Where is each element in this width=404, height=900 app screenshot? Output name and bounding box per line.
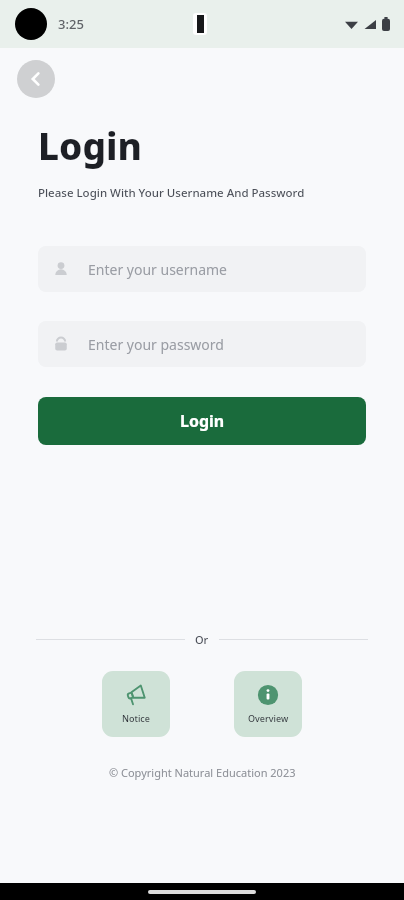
staticText: Or (195, 632, 209, 647)
staticText: Please Login With Your Username And Pass… (38, 185, 305, 201)
staticText: Login (38, 120, 142, 170)
button[interactable]: Overview (234, 671, 302, 737)
staticText: Enter your username (88, 260, 228, 279)
button[interactable]: Enter your password (38, 321, 366, 367)
button[interactable]: Notice (102, 671, 170, 737)
staticText: Overview (248, 712, 289, 724)
staticText: © Copyright Natural Education 2023 (109, 765, 296, 780)
button[interactable]: Login (38, 397, 366, 445)
button[interactable]: Back (17, 60, 55, 98)
staticText: 3:25 (58, 15, 84, 33)
staticText: Notice (122, 712, 150, 724)
staticText: Enter your password (88, 335, 224, 354)
button[interactable]: Enter your username (38, 246, 366, 292)
staticText: Login (180, 410, 225, 432)
